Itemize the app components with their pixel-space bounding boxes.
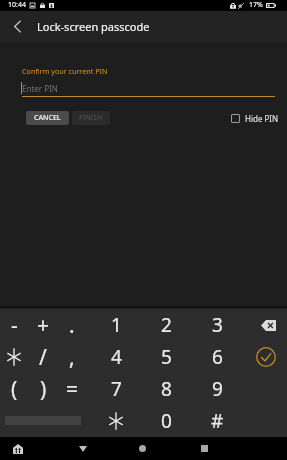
staticText: 10:44 — [8, 0, 26, 10]
button[interactable]: 3 — [195, 309, 239, 341]
staticText: . — [69, 311, 75, 340]
staticText: = — [66, 375, 79, 404]
button[interactable]: 0 — [144, 405, 188, 437]
staticText: CANCEL — [34, 113, 61, 123]
button[interactable] — [1, 341, 27, 373]
staticText: 7 — [111, 376, 122, 402]
staticText: 17% — [249, 0, 263, 10]
button[interactable]: Enter — [244, 341, 287, 373]
button[interactable]: . — [59, 309, 85, 341]
staticText: 6 — [212, 344, 223, 370]
button[interactable]: , — [59, 341, 85, 373]
button[interactable]: 7 — [94, 373, 138, 405]
staticText: # — [211, 408, 224, 434]
button[interactable]: 1 — [94, 309, 138, 341]
staticText: 0 — [161, 408, 172, 434]
button[interactable]: = — [59, 373, 85, 405]
staticText: ( — [11, 375, 18, 404]
staticText: , — [69, 343, 75, 372]
button[interactable]: CANCEL — [26, 111, 69, 125]
staticText: 9 — [212, 376, 223, 402]
button[interactable]: Accessibility menu — [6, 437, 29, 460]
button[interactable] — [94, 405, 138, 437]
staticText: 2 — [161, 312, 172, 338]
staticText: ) — [40, 375, 47, 404]
button[interactable]: Hide PIN — [231, 111, 279, 125]
button[interactable]: ) — [30, 373, 56, 405]
staticText: FINISH — [79, 113, 103, 123]
button[interactable]: Back — [2, 11, 33, 42]
button[interactable]: 8 — [144, 373, 188, 405]
button[interactable]: # — [195, 405, 239, 437]
staticText: 1 — [111, 312, 122, 338]
button[interactable]: Home — [131, 437, 154, 460]
button[interactable]: 2 — [144, 309, 188, 341]
staticText: 3 — [212, 312, 223, 338]
staticText: 8 — [161, 376, 172, 402]
button[interactable]: Back — [71, 437, 94, 460]
button[interactable]: Backspace — [246, 309, 287, 341]
button[interactable]: 6 — [195, 341, 239, 373]
button[interactable]: Recent apps — [193, 437, 216, 460]
staticText: Enter PIN — [22, 83, 58, 94]
button[interactable]: 4 — [94, 341, 138, 373]
button[interactable]: 5 — [144, 341, 188, 373]
staticText: + — [37, 311, 50, 340]
button[interactable]: 9 — [195, 373, 239, 405]
staticText: Lock-screen passcode — [37, 19, 150, 34]
staticText: Hide PIN — [245, 113, 279, 124]
staticText: 5 — [161, 344, 172, 370]
staticText: Confirm your current PIN — [22, 66, 108, 76]
staticText: / — [39, 343, 47, 372]
button[interactable]: + — [30, 309, 56, 341]
staticText: 4 — [111, 344, 122, 370]
button[interactable]: / — [30, 341, 56, 373]
button[interactable]: ( — [1, 373, 27, 405]
button[interactable]: FINISH — [72, 111, 110, 125]
button[interactable]: - — [1, 309, 27, 341]
staticText: - — [11, 311, 18, 340]
